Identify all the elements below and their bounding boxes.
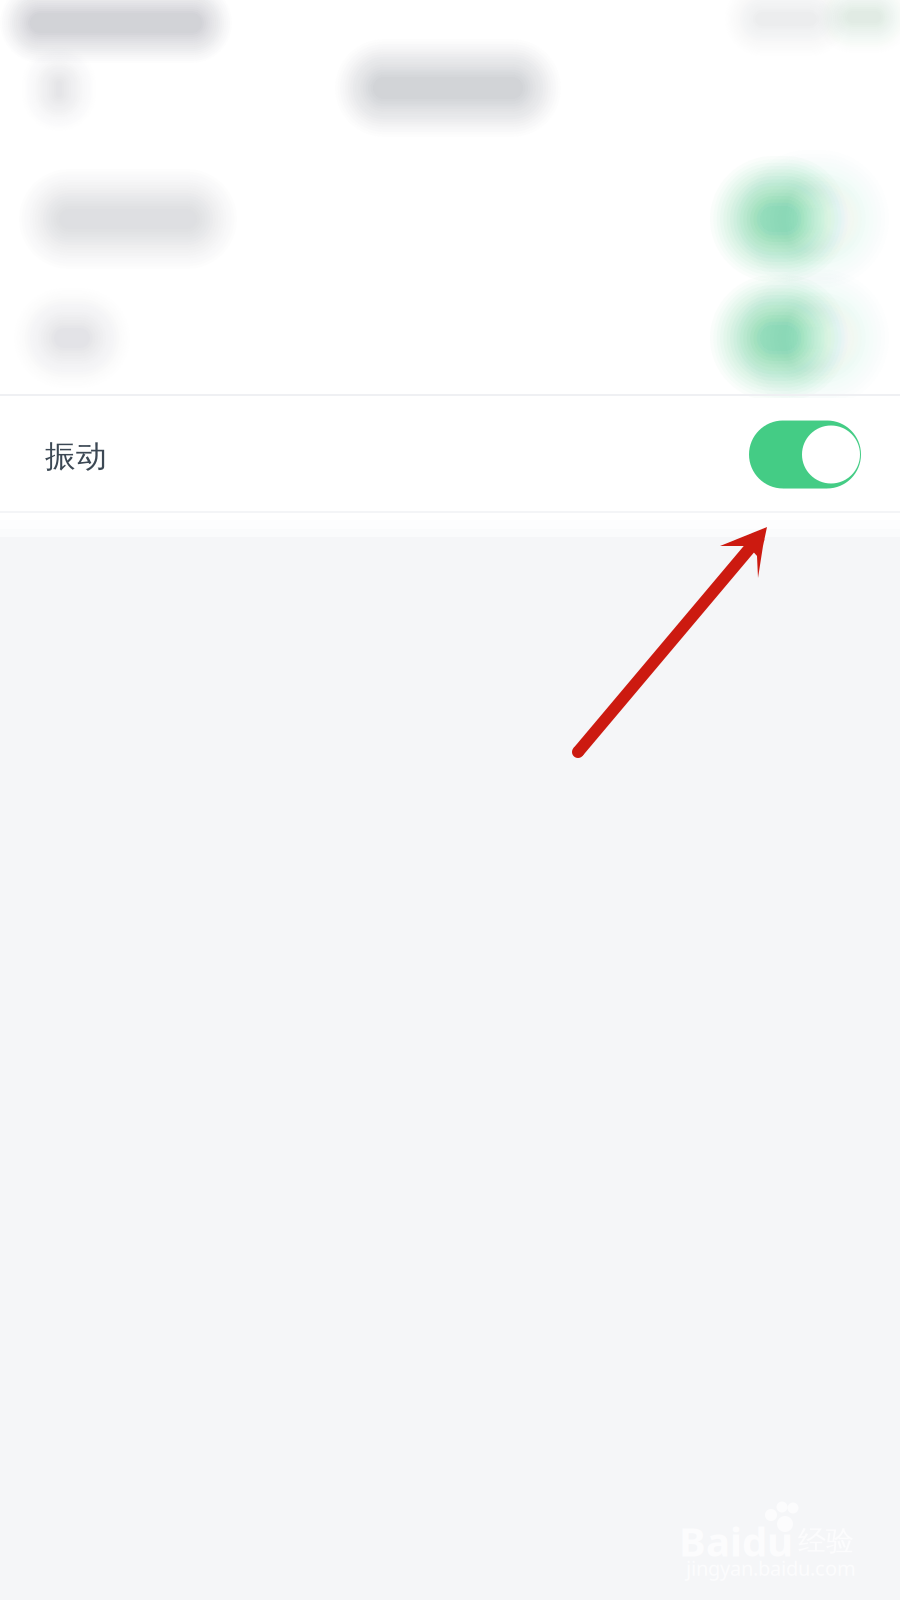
staticText: 振动: [45, 438, 107, 475]
staticText: Baidu: [679, 1514, 793, 1567]
button[interactable]: 振动: [0, 398, 900, 515]
